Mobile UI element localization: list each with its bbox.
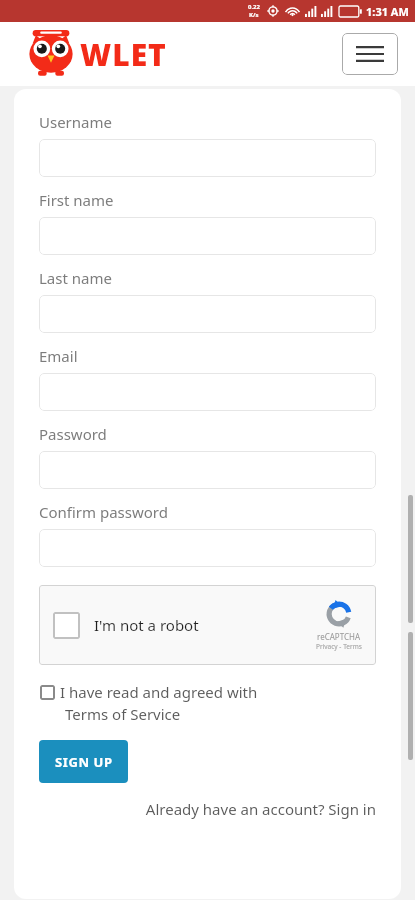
button[interactable] <box>39 139 376 177</box>
button[interactable] <box>39 295 376 333</box>
button[interactable]: I'm not a robot checkbox <box>53 612 80 639</box>
button[interactable] <box>39 529 376 567</box>
staticText: Terms of Service <box>65 704 181 724</box>
button[interactable]: I have read and agreed with <box>39 682 376 724</box>
button[interactable]: Menu <box>342 33 398 75</box>
staticText: I'm not a robot <box>94 615 199 635</box>
staticText: Privacy - Terms <box>316 642 362 651</box>
button[interactable] <box>39 217 376 255</box>
button[interactable]: SIGN UP <box>39 740 128 783</box>
staticText: WLET <box>80 34 167 75</box>
staticText: First name <box>39 190 114 210</box>
button[interactable] <box>39 451 376 489</box>
staticText: K/s <box>249 11 259 19</box>
staticText: Confirm password <box>39 502 168 522</box>
staticText: 0.22 <box>248 3 260 11</box>
staticText: 1:31 AM <box>366 4 409 19</box>
button[interactable]: Already have an account? Sign in <box>39 799 376 819</box>
staticText: reCAPTCHA <box>317 631 361 642</box>
staticText: Password <box>39 424 107 444</box>
button[interactable] <box>39 373 376 411</box>
staticText: Last name <box>39 268 112 288</box>
staticText: Username <box>39 112 112 132</box>
staticText: Email <box>39 346 78 366</box>
staticText: I have read and agreed with <box>60 682 258 702</box>
staticText: SIGN UP <box>55 753 113 771</box>
